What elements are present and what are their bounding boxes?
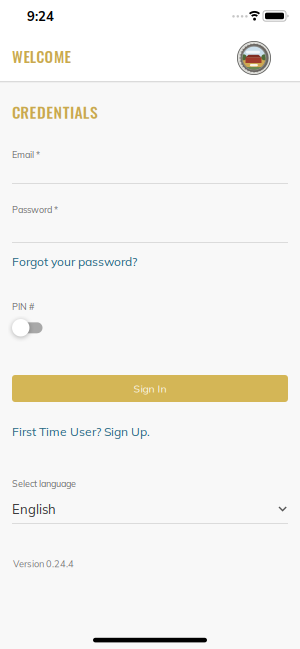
button[interactable]: Use PIN — [12, 319, 43, 337]
staticText: WELCOME — [12, 45, 70, 67]
staticText: Forgot your password? — [12, 254, 137, 269]
button[interactable]: Forgot your password? — [12, 254, 137, 269]
staticText: PIN # — [12, 301, 34, 312]
staticText: Select language — [12, 478, 76, 489]
button[interactable]: Sign In — [12, 375, 288, 402]
staticText: Version 0.24.4 — [13, 558, 74, 569]
staticText: Sign In — [133, 382, 166, 395]
staticText: 9:24 — [27, 8, 54, 24]
staticText: Email * — [12, 149, 40, 160]
button[interactable]: Select language: English — [0, 501, 300, 524]
staticText: CREDENTIALS — [12, 100, 98, 123]
staticText: English — [12, 501, 56, 517]
button[interactable]: First Time User? Sign Up. — [12, 424, 150, 439]
staticText: Password * — [12, 204, 58, 215]
staticText: First Time User? Sign Up. — [12, 424, 150, 439]
